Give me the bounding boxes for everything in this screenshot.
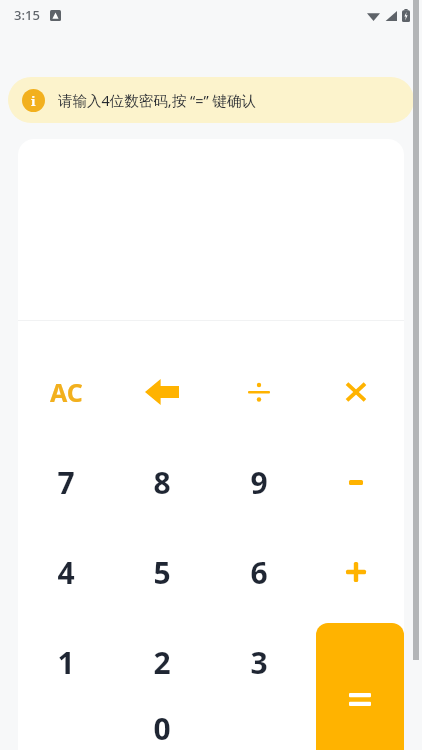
staticText: 1 [57, 642, 75, 683]
button[interactable]: 2 [114, 617, 210, 707]
staticText: 5 [153, 552, 171, 593]
button[interactable]: 3 [210, 617, 307, 707]
staticText: 9 [250, 462, 268, 503]
button[interactable]: 0 [114, 707, 210, 750]
button[interactable]: Multiply [307, 347, 404, 437]
button[interactable]: 4 [18, 527, 114, 617]
staticText: 请输入4位数密码,按 “=” 键确认 [58, 90, 256, 110]
button[interactable]: i [8, 77, 414, 123]
button[interactable]: Minus [307, 437, 404, 527]
staticText: 8 [153, 462, 171, 503]
staticText: 2 [153, 642, 171, 683]
button[interactable]: Equals [316, 623, 404, 750]
staticText: i [31, 92, 36, 110]
button[interactable]: AC [18, 347, 114, 437]
button[interactable]: Plus [307, 527, 404, 617]
button[interactable]: Backspace [114, 347, 210, 437]
button[interactable]: 9 [210, 437, 307, 527]
button[interactable]: Divide [210, 347, 307, 437]
staticText: 3 [250, 642, 268, 683]
staticText: AC [50, 375, 83, 409]
button[interactable]: 5 [114, 527, 210, 617]
button[interactable]: 1 [18, 617, 114, 707]
button[interactable]: 8 [114, 437, 210, 527]
button[interactable]: 6 [210, 527, 307, 617]
button[interactable]: 7 [18, 437, 114, 527]
staticText: 0 [153, 708, 171, 749]
staticText: 4 [57, 552, 75, 593]
staticText: 7 [57, 462, 75, 503]
staticText: 3:15 [14, 6, 40, 24]
staticText: 6 [250, 552, 268, 593]
